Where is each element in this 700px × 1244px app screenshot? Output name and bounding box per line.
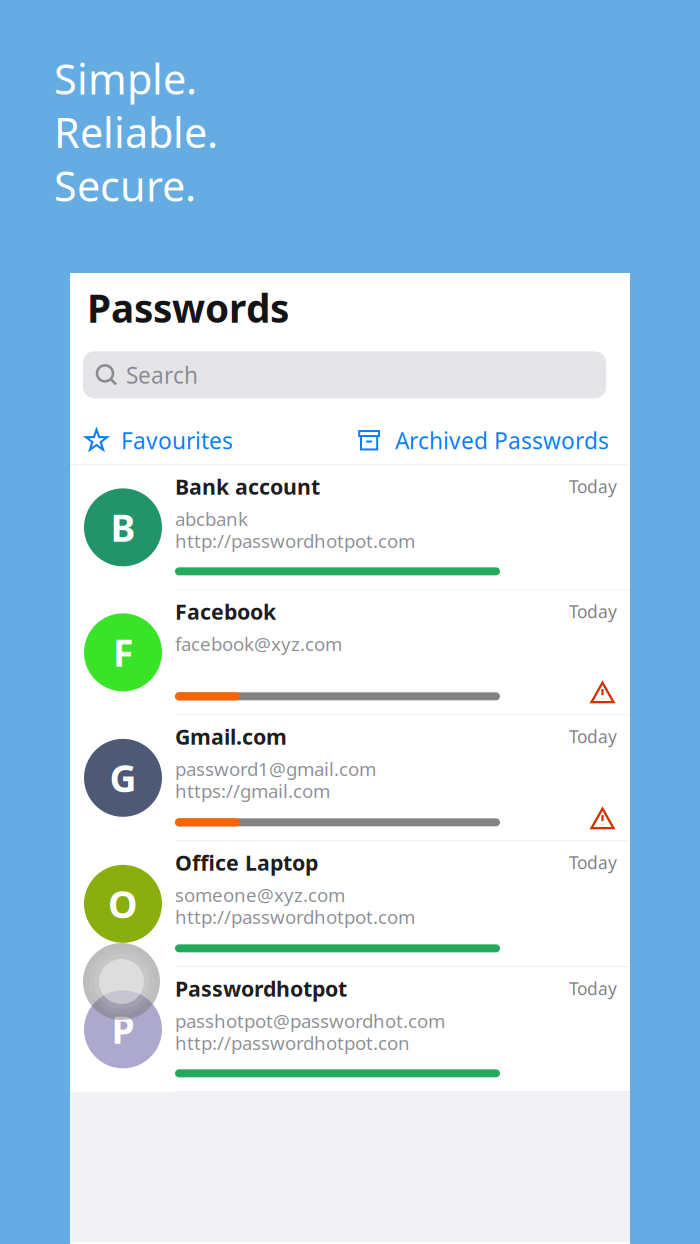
staticText: Secure. bbox=[54, 158, 196, 213]
staticText: abcbank bbox=[175, 506, 248, 531]
staticText: Passwords bbox=[87, 282, 289, 333]
staticText: Simple. bbox=[54, 51, 197, 106]
staticText: http://passwordhotpot.com bbox=[175, 904, 415, 929]
staticText: http://passwordhotpot.com bbox=[175, 528, 415, 553]
staticText: password1@gmail.com bbox=[175, 756, 376, 781]
staticText: someone@xyz.com bbox=[175, 882, 345, 907]
staticText: Today bbox=[569, 600, 617, 623]
staticText: Today bbox=[569, 851, 617, 874]
staticText: Gmail.com bbox=[175, 722, 287, 751]
staticText: https://gmail.com bbox=[175, 778, 330, 803]
staticText: Today bbox=[569, 725, 617, 748]
staticText: F bbox=[113, 628, 133, 677]
staticText: P bbox=[111, 1005, 134, 1054]
staticText: G bbox=[109, 753, 136, 803]
button[interactable]: G bbox=[70, 715, 630, 840]
staticText: Facebook bbox=[175, 597, 276, 626]
staticText: Favourites bbox=[121, 425, 233, 455]
staticText: O bbox=[108, 879, 138, 929]
staticText: Office Laptop bbox=[175, 848, 318, 877]
staticText: Passwordhotpot bbox=[175, 974, 347, 1003]
staticText: passhotpot@passwordhot.com bbox=[175, 1008, 445, 1033]
button[interactable]: F bbox=[70, 590, 630, 714]
staticText: Today bbox=[569, 977, 617, 1000]
button[interactable]: P bbox=[70, 967, 630, 1091]
staticText: facebook@xyz.com bbox=[175, 631, 342, 656]
staticText: Reliable. bbox=[54, 104, 218, 159]
staticText: Today bbox=[569, 475, 617, 498]
staticText: Search bbox=[126, 360, 198, 390]
staticText: http://passwordhotpot.con bbox=[175, 1030, 410, 1055]
button[interactable]: B bbox=[70, 465, 630, 589]
staticText: B bbox=[110, 503, 135, 552]
button[interactable]: Favourites bbox=[85, 416, 233, 464]
staticText: Archived Passwords bbox=[395, 425, 609, 455]
staticText: Bank account bbox=[175, 472, 320, 501]
button[interactable]: O bbox=[70, 841, 630, 966]
button[interactable]: Archived Passwords bbox=[358, 416, 609, 464]
